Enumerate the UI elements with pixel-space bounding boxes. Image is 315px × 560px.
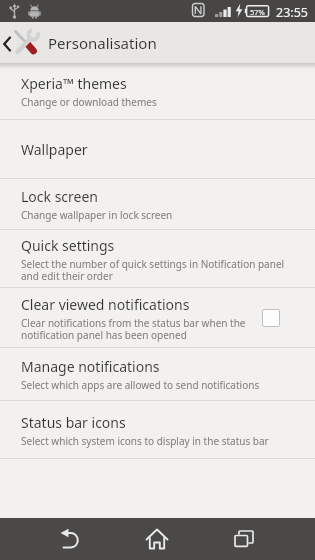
staticText: Select the number of quick settings in N… xyxy=(21,257,285,283)
button[interactable]: Lock screen xyxy=(0,179,315,230)
button[interactable]: Xperia™ themes xyxy=(0,63,315,120)
staticText: Clear notifications from the status bar … xyxy=(21,316,246,342)
button[interactable] xyxy=(262,309,280,327)
staticText: Change wallpaper in lock screen xyxy=(21,208,173,222)
staticText: Select which system icons to display in … xyxy=(21,434,269,448)
button[interactable]: Quick settings xyxy=(0,230,315,288)
staticText: Wallpaper xyxy=(21,140,88,159)
button[interactable]: Manage notifications xyxy=(0,348,315,401)
staticText: Xperia™ themes xyxy=(21,74,127,93)
button[interactable]: Clear viewed notifications xyxy=(0,288,315,348)
button[interactable]: Wallpaper xyxy=(0,120,315,179)
button[interactable] xyxy=(135,518,179,560)
staticText: Lock screen xyxy=(21,187,99,206)
staticText: Quick settings xyxy=(21,236,115,255)
staticText: 57% xyxy=(250,7,265,17)
staticText: Manage notifications xyxy=(21,357,160,376)
button[interactable] xyxy=(48,518,92,560)
button[interactable]: Status bar icons xyxy=(0,401,315,459)
staticText: Status bar icons xyxy=(21,413,126,432)
staticText: Clear viewed notifications xyxy=(21,295,190,314)
staticText: 23:55 xyxy=(276,4,308,21)
button[interactable] xyxy=(222,518,266,560)
staticText: Personalisation xyxy=(48,33,157,53)
staticText: Change or download themes xyxy=(21,95,157,109)
button[interactable]: Personalisation xyxy=(0,22,315,63)
staticText: Select which apps are allowed to send no… xyxy=(21,378,260,392)
